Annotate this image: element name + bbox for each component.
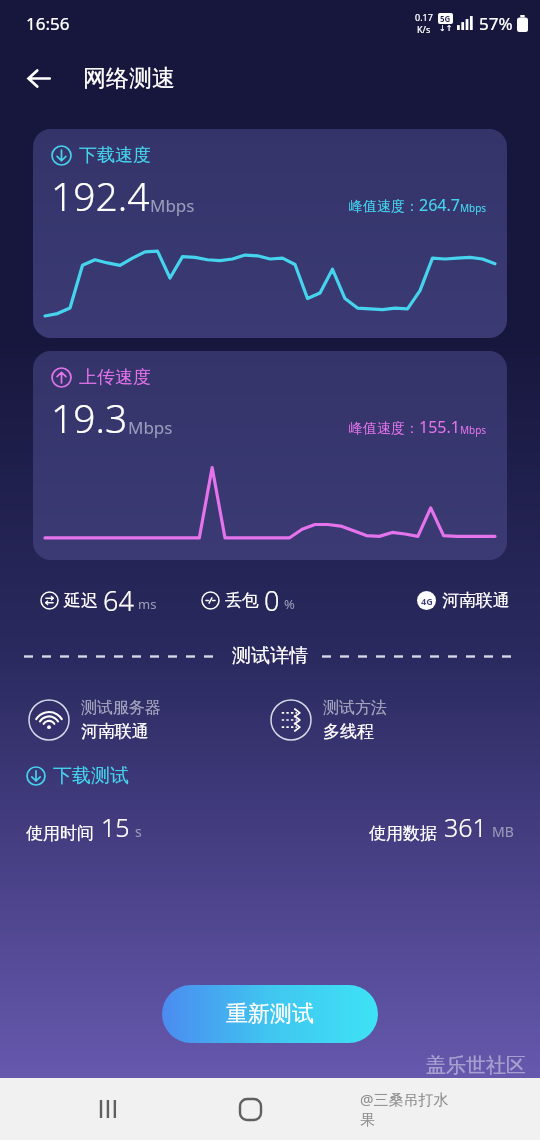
staticText: 重新测试 [226, 1000, 314, 1028]
staticText: s [135, 822, 142, 841]
staticText: 河南联通 [81, 721, 149, 742]
staticText: 155.1 [419, 416, 460, 438]
staticText: 15 [101, 810, 130, 844]
staticText: 5G [440, 13, 451, 24]
button[interactable]: 延迟 [40, 582, 157, 619]
staticText: 下载测试 [53, 764, 129, 788]
staticText: 河南联通 [442, 590, 510, 611]
button[interactable]: 用户署名 [360, 1079, 460, 1139]
staticText: 16:56 [26, 12, 70, 35]
staticText: 4G [421, 595, 433, 607]
staticText: 使用时间 [26, 823, 94, 844]
button[interactable]: 返回 [14, 54, 62, 102]
staticText: 多线程 [323, 721, 374, 742]
button[interactable]: 重新测试 [162, 985, 378, 1043]
staticText: 64 [103, 582, 134, 619]
button[interactable]: 丢包 [201, 582, 295, 619]
staticText: @三桑吊打水果 [360, 1089, 460, 1130]
staticText: Mbps [460, 423, 487, 437]
staticText: 峰值速度： [349, 198, 419, 216]
staticText: 264.7 [419, 194, 460, 216]
button[interactable]: 主屏幕 [220, 1079, 280, 1139]
button[interactable]: 测试方法 [270, 698, 512, 742]
staticText: 测试服务器 [81, 698, 161, 718]
staticText: MB [492, 822, 514, 841]
staticText: Mbps [128, 416, 173, 439]
staticText: 峰值速度： [349, 420, 419, 438]
staticText: 19.3 [51, 391, 128, 444]
staticText: 0.17 [415, 11, 433, 23]
staticText: 下载速度 [79, 144, 151, 167]
button[interactable]: 最近任务 [80, 1079, 140, 1139]
staticText: 丢包 [225, 590, 259, 611]
staticText: 盖乐世社区 [426, 1053, 526, 1078]
staticText: % [284, 595, 295, 613]
staticText: ms [138, 595, 157, 613]
staticText: 0 [264, 582, 280, 619]
staticText: 延迟 [64, 590, 98, 611]
staticText: Mbps [150, 194, 195, 217]
staticText: 192.4 [51, 169, 150, 222]
staticText: K/s [417, 23, 431, 35]
staticText: ↓↑ [439, 24, 453, 33]
button[interactable]: 上传速度 [33, 351, 507, 560]
staticText: 使用数据 [369, 823, 437, 844]
staticText: 测试方法 [323, 698, 387, 718]
staticText: 网络测速 [83, 64, 175, 93]
staticText: 57% [479, 12, 513, 35]
button[interactable]: 测试服务器 [28, 698, 270, 742]
staticText: 上传速度 [79, 366, 151, 389]
staticText: 测试详情 [232, 644, 308, 668]
button[interactable]: 下载速度 [33, 129, 507, 338]
button[interactable]: 4G [417, 590, 510, 611]
staticText: 361 [444, 810, 487, 844]
staticText: Mbps [460, 201, 487, 215]
